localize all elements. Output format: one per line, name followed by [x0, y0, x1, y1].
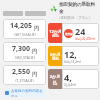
button[interactable]: 6か月	[48, 46, 99, 66]
staticText: 12か月	[49, 29, 62, 34]
staticText: 24	[75, 25, 86, 37]
staticText: 2か月払	[48, 74, 62, 85]
button[interactable]: 12か月	[48, 23, 99, 43]
staticText: 7,300	[12, 44, 31, 54]
staticText: (税込13,2円)	[64, 60, 81, 64]
other: プランアイコン	[50, 5, 57, 12]
staticText: 4,	[64, 71, 72, 83]
staticText: (税1,5日A/月)	[14, 32, 36, 37]
button[interactable]: 2,550	[3, 65, 46, 85]
staticText: 前払	[52, 34, 59, 38]
staticText: 円	[32, 48, 37, 54]
staticText: (込4,4円)	[64, 83, 77, 87]
staticText: (税2,37A/月)	[15, 55, 35, 60]
button[interactable]: 14,205	[3, 19, 46, 39]
staticText: お客様の契約内容を見る	[11, 89, 44, 97]
staticText: 円	[32, 71, 37, 77]
staticText: 〔支払区分・プラン〕	[57, 16, 93, 20]
staticText: 14,205	[10, 21, 33, 31]
staticText: (税込26,400円)	[75, 37, 96, 41]
button[interactable]: 詳細情報	[3, 89, 46, 97]
button[interactable]: 7,300	[3, 42, 46, 62]
staticText: 最安値	[65, 32, 73, 35]
staticText: (1,275A/月)	[15, 78, 34, 83]
staticText: 6か月	[50, 52, 61, 57]
staticText: 2,550	[12, 67, 31, 77]
button[interactable]: 2か月払	[48, 69, 99, 89]
staticText: 前払	[52, 57, 59, 61]
staticText: 指定契約の受取料金	[59, 2, 99, 14]
other: 詳細情報	[5, 91, 9, 95]
staticText: 12,	[64, 48, 77, 60]
staticText: 円	[34, 25, 39, 31]
